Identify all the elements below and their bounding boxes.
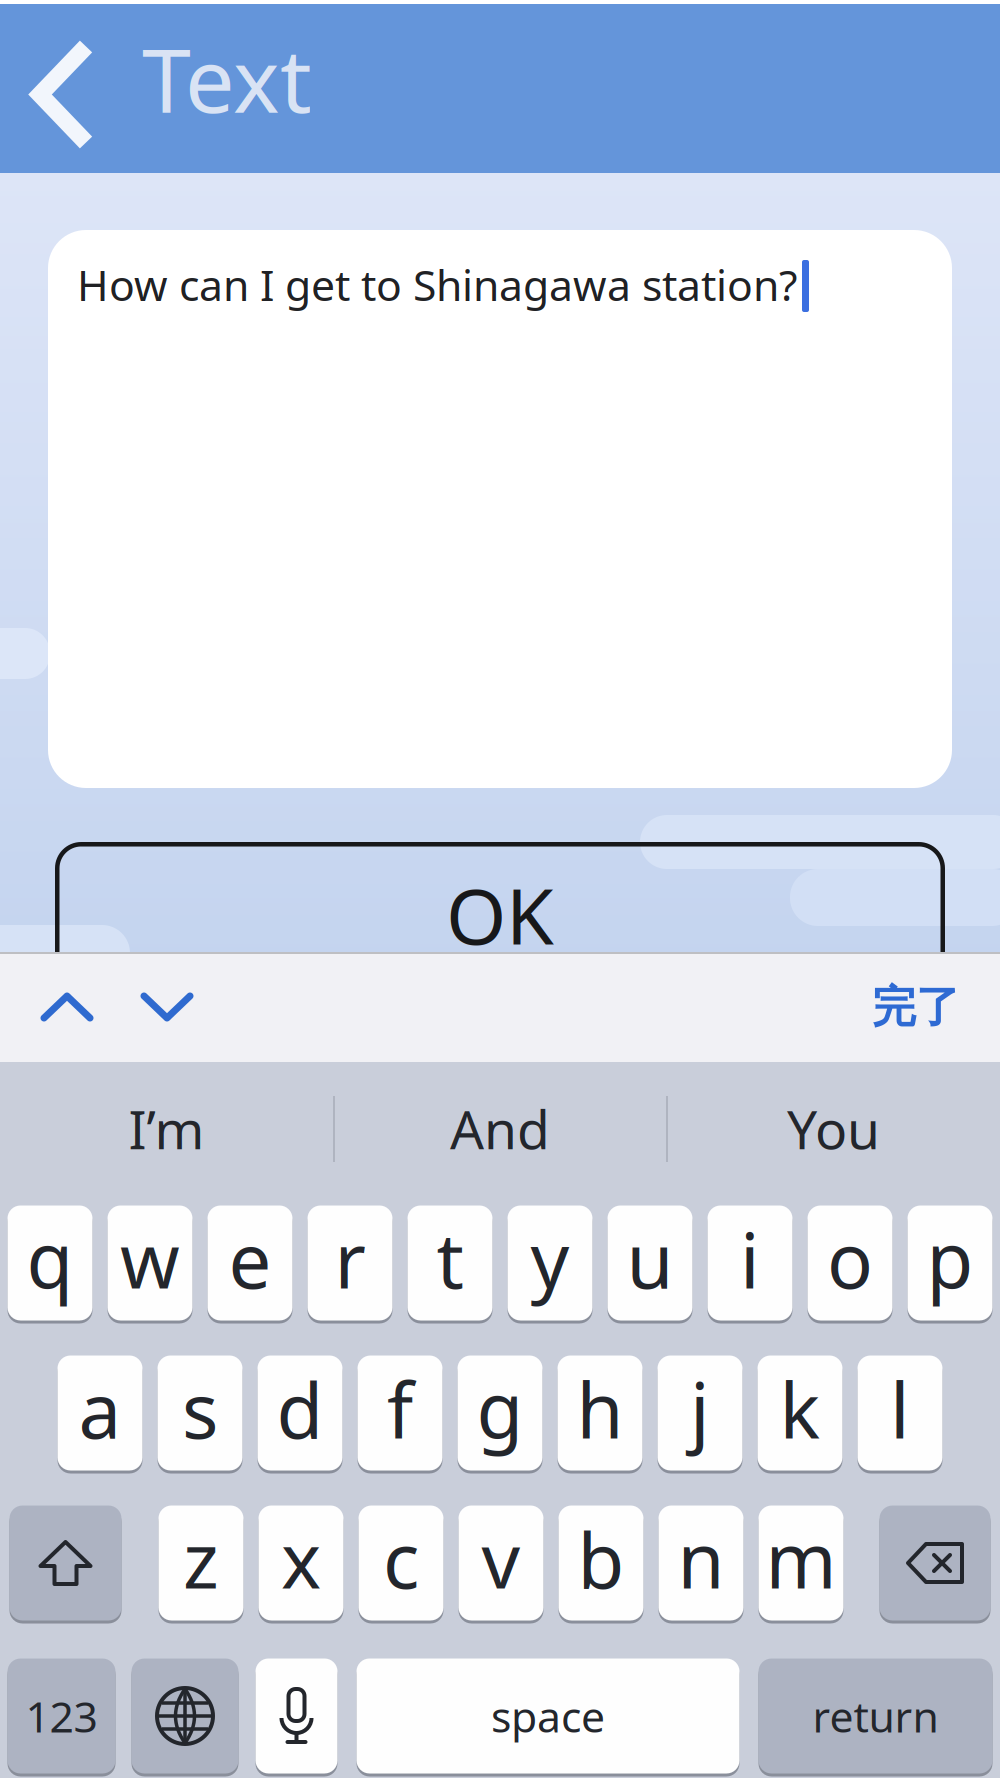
staticText: t [436, 1208, 463, 1309]
staticText: v [481, 1508, 520, 1609]
button[interactable]: space [356, 1657, 739, 1775]
staticText: space [491, 1688, 605, 1744]
staticText: Text [142, 20, 312, 137]
staticText: h [576, 1358, 623, 1459]
staticText: p [926, 1208, 973, 1309]
staticText: s [182, 1358, 218, 1459]
button[interactable]: p [907, 1204, 992, 1322]
staticText: j [690, 1358, 710, 1459]
staticText: How can I get to Shinagawa station? [77, 256, 798, 313]
button[interactable]: 123 [7, 1657, 115, 1775]
button[interactable]: Previous field [0, 952, 94, 1062]
staticText: You [787, 1093, 880, 1164]
button[interactable]: f [357, 1354, 442, 1472]
staticText: x [281, 1508, 321, 1609]
button[interactable]: a [57, 1354, 142, 1472]
staticText: I’m [128, 1093, 204, 1164]
staticText: 完了 [872, 980, 960, 1034]
staticText: OK [446, 863, 554, 966]
button[interactable]: Delete [879, 1504, 990, 1622]
staticText: i [740, 1208, 760, 1309]
button[interactable]: c [358, 1504, 443, 1622]
staticText: m [765, 1508, 836, 1609]
staticText: l [890, 1358, 910, 1459]
button[interactable]: Shift [9, 1504, 121, 1622]
button[interactable]: g [457, 1354, 542, 1472]
staticText: w [120, 1208, 180, 1309]
staticText: e [228, 1208, 271, 1309]
button[interactable]: u [607, 1204, 692, 1322]
button[interactable]: You [667, 1062, 1000, 1195]
button[interactable]: And [333, 1062, 667, 1195]
button[interactable]: y [507, 1204, 592, 1322]
button[interactable]: Back [0, 32, 92, 144]
button[interactable]: v [458, 1504, 543, 1622]
button[interactable]: return [758, 1657, 992, 1775]
button[interactable]: OK [55, 842, 945, 1005]
button[interactable]: e [207, 1204, 292, 1322]
button[interactable]: I’m [0, 1062, 333, 1195]
staticText: d [276, 1358, 323, 1459]
button[interactable]: 完了 [872, 980, 1000, 1034]
button[interactable]: h [557, 1354, 642, 1472]
button[interactable]: Next keyboard [131, 1657, 238, 1775]
staticText: o [827, 1208, 873, 1309]
staticText: 123 [25, 1688, 97, 1744]
button[interactable]: Next field [94, 952, 194, 1062]
staticText: q [26, 1208, 73, 1309]
button[interactable]: r [307, 1204, 392, 1322]
button[interactable]: q [7, 1204, 92, 1322]
button[interactable]: z [158, 1504, 243, 1622]
button[interactable]: Dictate [255, 1657, 337, 1775]
button[interactable]: b [558, 1504, 643, 1622]
staticText: n [677, 1508, 724, 1609]
staticText: k [779, 1358, 820, 1459]
button[interactable]: j [657, 1354, 742, 1472]
button[interactable]: How can I get to Shinagawa station? [48, 230, 952, 788]
button[interactable]: m [758, 1504, 843, 1622]
staticText: a [78, 1358, 121, 1459]
button[interactable]: k [757, 1354, 842, 1472]
button[interactable]: x [258, 1504, 343, 1622]
staticText: f [387, 1358, 413, 1459]
staticText: And [450, 1093, 550, 1164]
button[interactable]: n [658, 1504, 743, 1622]
staticText: y [530, 1208, 569, 1309]
button[interactable]: i [707, 1204, 792, 1322]
staticText: g [476, 1358, 523, 1459]
staticText: c [383, 1508, 419, 1609]
button[interactable]: d [257, 1354, 342, 1472]
staticText: r [334, 1208, 365, 1309]
button[interactable]: t [407, 1204, 492, 1322]
button[interactable]: l [857, 1354, 942, 1472]
staticText: u [626, 1208, 673, 1309]
button[interactable]: o [807, 1204, 892, 1322]
button[interactable]: w [107, 1204, 192, 1322]
staticText: return [812, 1688, 938, 1744]
staticText: z [183, 1508, 219, 1609]
staticText: b [577, 1508, 624, 1609]
button[interactable]: s [157, 1354, 242, 1472]
